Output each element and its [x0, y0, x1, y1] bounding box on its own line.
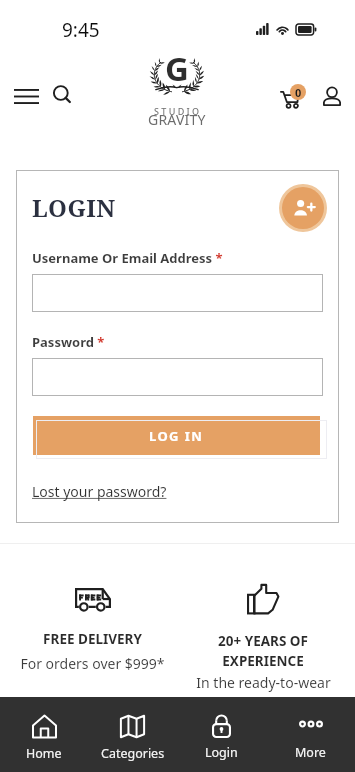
staticText: 20+ YEARS OF EXPERIENCE	[218, 632, 308, 670]
staticText: 0	[295, 85, 302, 100]
button[interactable]	[32, 274, 323, 312]
button[interactable]	[32, 358, 323, 396]
staticText: Password *	[32, 333, 105, 351]
button[interactable]: Cart	[280, 84, 306, 108]
staticText: S T U D I O	[154, 105, 200, 117]
button[interactable]: LOG IN	[33, 416, 320, 455]
staticText: More	[295, 744, 326, 761]
staticText: For orders over $999*	[20, 654, 165, 673]
staticText: LOGIN	[32, 191, 116, 224]
staticText: Categories	[101, 745, 165, 762]
staticText: FREE DELIVERY	[43, 630, 142, 648]
button[interactable]: Categories	[88, 697, 177, 772]
button[interactable]: Menu	[8, 84, 45, 109]
button[interactable]: Search	[50, 82, 76, 108]
staticText: In the ready-to-wear	[196, 673, 331, 692]
staticText: LOG IN	[149, 427, 204, 445]
button[interactable]: More	[266, 697, 355, 772]
button[interactable]: Register	[279, 184, 327, 232]
staticText: Username Or Email Address *	[32, 249, 223, 267]
staticText: 9:45	[62, 17, 100, 43]
staticText: GRAVITY	[148, 110, 206, 129]
button[interactable]: Login	[177, 697, 266, 772]
staticText: G	[165, 46, 189, 90]
button[interactable]: Home	[0, 697, 88, 772]
staticText: Home	[26, 745, 62, 762]
button[interactable]: Account	[321, 85, 343, 109]
button[interactable]: Lost your password?	[32, 482, 167, 501]
staticText: Login	[205, 744, 238, 761]
